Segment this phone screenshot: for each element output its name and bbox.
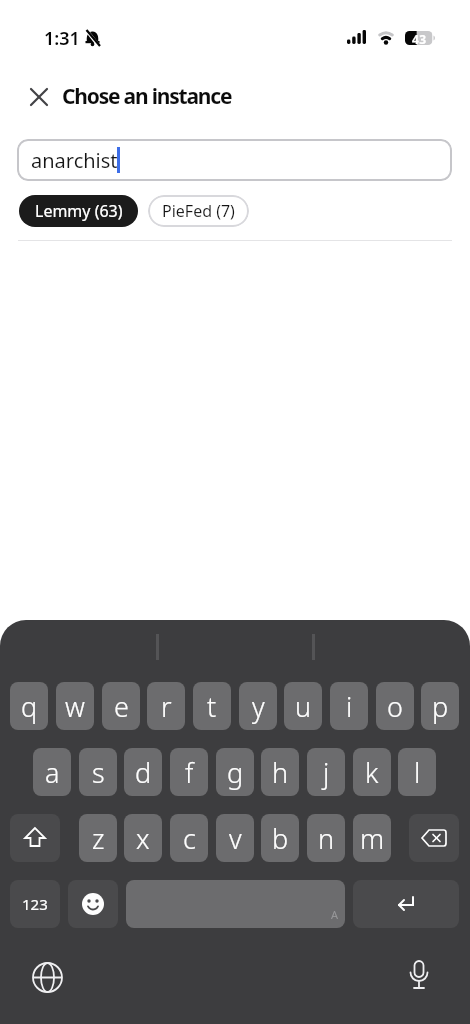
button[interactable]: Lemmy (63) [19, 195, 138, 227]
staticText: r [161, 688, 172, 725]
button[interactable]: PieFed (7) [148, 195, 249, 227]
staticText: A [331, 907, 339, 922]
staticText: f [185, 754, 194, 791]
staticText: t [207, 688, 217, 725]
button[interactable]: l [398, 748, 436, 796]
button[interactable]: y [239, 682, 277, 730]
button[interactable]: 123 [10, 880, 60, 928]
staticText: a [45, 754, 60, 791]
button[interactable] [401, 959, 437, 995]
staticText: u [295, 688, 312, 725]
staticText: h [272, 754, 289, 791]
staticText: q [21, 688, 38, 725]
button[interactable]: o [376, 682, 414, 730]
button[interactable]: z [79, 814, 117, 862]
button[interactable] [68, 880, 118, 928]
button[interactable]: a [33, 748, 71, 796]
staticText: Lemmy (63) [35, 200, 123, 222]
staticText: v [229, 820, 242, 857]
staticText: c [183, 820, 196, 857]
button[interactable]: c [170, 814, 208, 862]
staticText: d [135, 754, 152, 791]
staticText: o [387, 688, 403, 725]
button[interactable]: u [284, 682, 322, 730]
button[interactable]: e [102, 682, 140, 730]
button[interactable]: v [216, 814, 254, 862]
staticText: l [414, 754, 421, 791]
button[interactable]: m [353, 814, 391, 862]
button[interactable] [126, 880, 345, 928]
button[interactable]: d [124, 748, 162, 796]
button[interactable] [353, 880, 459, 928]
button[interactable]: r [147, 682, 185, 730]
button[interactable]: q [10, 682, 48, 730]
button[interactable] [10, 814, 60, 862]
staticText: e [114, 688, 129, 725]
staticText: w [65, 688, 85, 725]
staticText: Chose an instance [62, 82, 232, 111]
staticText: x [136, 820, 150, 857]
staticText: p [432, 688, 449, 725]
staticText: 43 [412, 31, 427, 45]
button[interactable]: i [330, 682, 368, 730]
staticText: j [323, 754, 330, 791]
button[interactable]: k [353, 748, 391, 796]
button[interactable]: f [170, 748, 208, 796]
button[interactable]: b [261, 814, 299, 862]
button[interactable]: h [261, 748, 299, 796]
button[interactable]: s [79, 748, 117, 796]
button[interactable] [26, 84, 52, 110]
staticText: PieFed (7) [162, 200, 235, 222]
staticText: b [272, 820, 289, 857]
button[interactable]: t [193, 682, 231, 730]
staticText: anarchist [31, 147, 118, 174]
button[interactable]: p [421, 682, 459, 730]
button[interactable]: n [307, 814, 345, 862]
staticText: 1:31 [44, 26, 80, 51]
staticText: i [346, 688, 353, 725]
button[interactable] [29, 959, 65, 995]
button[interactable] [409, 814, 459, 862]
button[interactable]: w [56, 682, 94, 730]
button[interactable]: j [307, 748, 345, 796]
staticText: y [252, 688, 265, 725]
button[interactable]: x [124, 814, 162, 862]
staticText: z [92, 820, 105, 857]
staticText: m [360, 820, 385, 857]
staticText: g [227, 754, 244, 791]
button[interactable]: anarchist [17, 139, 452, 181]
staticText: n [318, 820, 335, 857]
staticText: k [365, 754, 379, 791]
staticText: s [92, 754, 105, 791]
button[interactable]: g [216, 748, 254, 796]
staticText: 123 [22, 894, 48, 914]
